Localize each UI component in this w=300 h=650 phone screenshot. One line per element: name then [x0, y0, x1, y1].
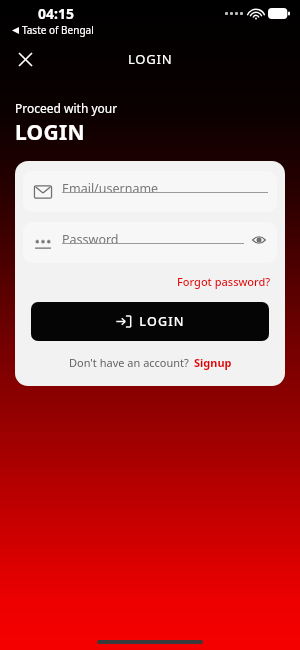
- button[interactable]: Don't have an account?: [23, 355, 277, 370]
- staticText: Taste of Bengal: [22, 23, 94, 37]
- staticText: Proceed with your: [15, 100, 118, 116]
- staticText: 04:15: [38, 4, 74, 23]
- staticText: LOGIN: [139, 313, 185, 330]
- button[interactable]: Show password: [250, 231, 268, 249]
- staticText: Signup: [194, 355, 232, 370]
- button[interactable]: Forgot password?: [171, 271, 277, 292]
- button[interactable]: Close: [8, 42, 42, 76]
- staticText: Password: [62, 231, 119, 248]
- button[interactable]: Password: [23, 222, 277, 263]
- staticText: LOGIN: [15, 118, 85, 147]
- staticText: Don't have an account?: [69, 355, 189, 370]
- staticText: Email/username: [62, 180, 159, 197]
- button[interactable]: LOGIN: [31, 302, 269, 341]
- staticText: LOGIN: [128, 50, 173, 68]
- staticText: Forgot password?: [177, 274, 271, 289]
- button[interactable]: Email/username: [23, 171, 277, 212]
